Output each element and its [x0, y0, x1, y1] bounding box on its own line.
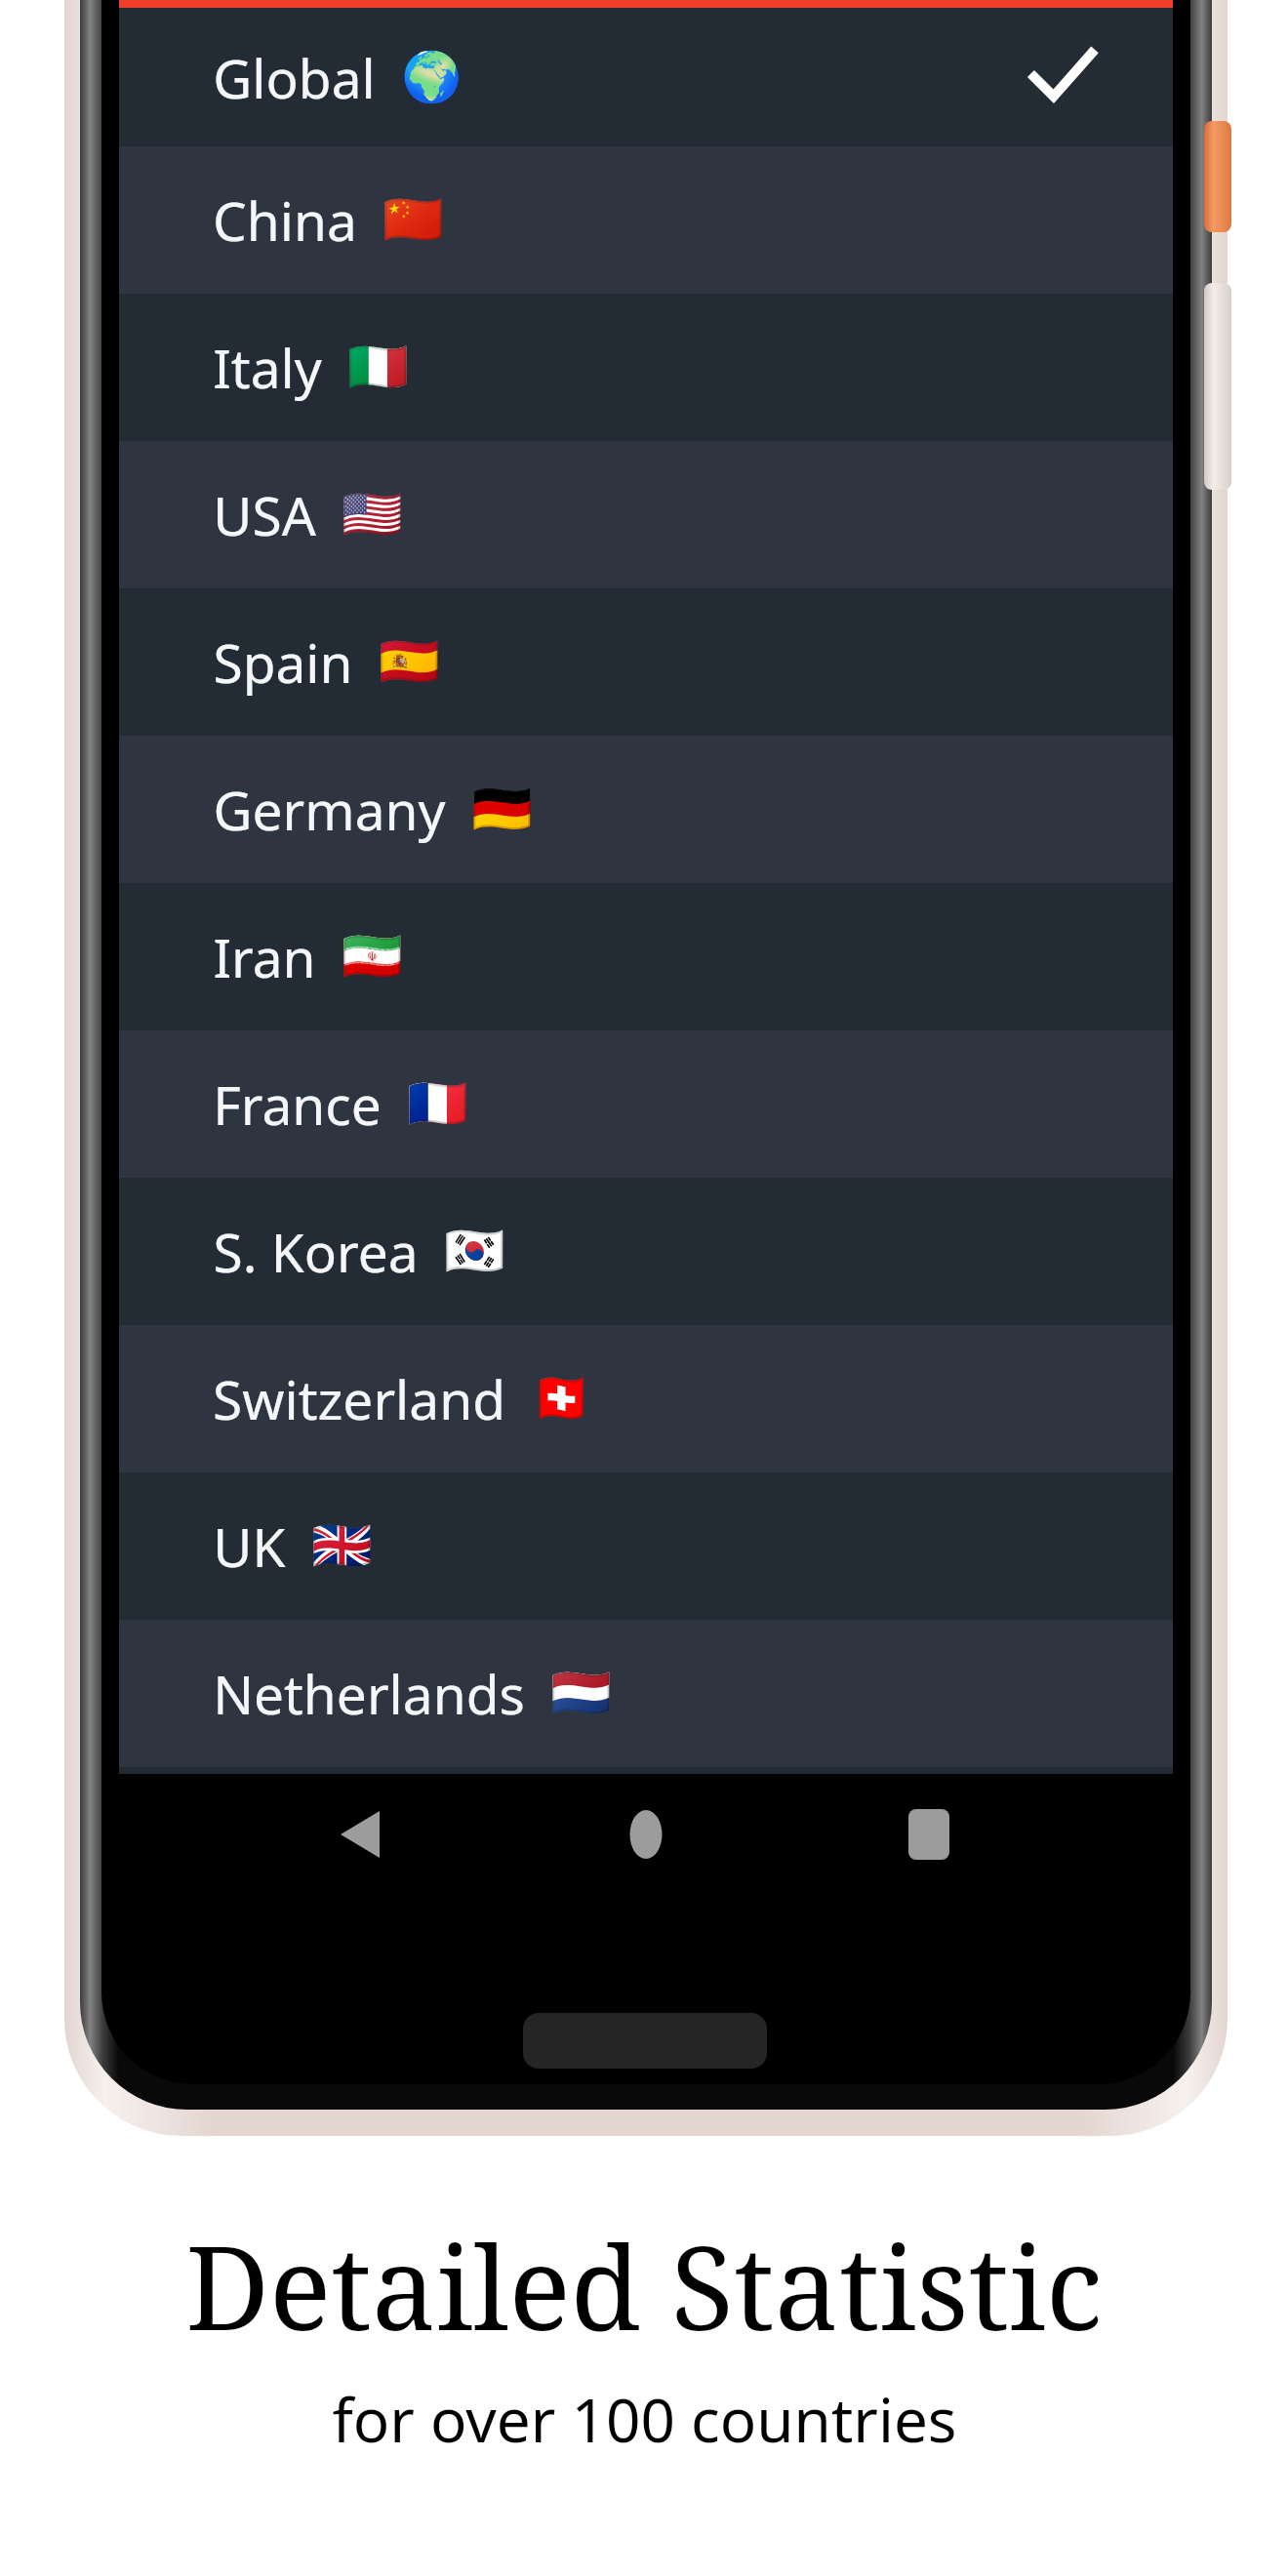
button[interactable]: Volume [1204, 283, 1231, 490]
button[interactable]: Italy [119, 294, 1173, 441]
staticText: 🇫🇷 [407, 1075, 468, 1133]
button[interactable]: Back [306, 1778, 420, 1891]
staticText: Germany [213, 773, 446, 846]
staticText: S. Korea [213, 1215, 419, 1288]
staticText: 🇨🇭 [531, 1370, 592, 1428]
staticText: 🇳🇱 [550, 1665, 612, 1722]
staticText: 🇮🇷 [342, 928, 403, 986]
button[interactable]: Global [119, 8, 1173, 146]
button[interactable]: S. Korea [119, 1178, 1173, 1325]
button[interactable]: Iran [119, 883, 1173, 1030]
staticText: Iran [213, 920, 316, 993]
staticText: Netherlands [213, 1657, 525, 1730]
staticText: 🇬🇧 [311, 1517, 373, 1575]
staticText: France [213, 1067, 382, 1141]
button[interactable]: Recent apps [872, 1778, 986, 1891]
button[interactable]: Germany [119, 736, 1173, 883]
staticText: 🇪🇸 [379, 633, 440, 691]
staticText: 🌍 [401, 49, 463, 106]
staticText: 🇨🇳 [382, 191, 444, 249]
staticText: Global [213, 41, 376, 114]
staticText: China [213, 183, 357, 257]
staticText: 🇮🇹 [347, 339, 409, 396]
button[interactable]: Home [589, 1778, 703, 1891]
staticText: Switzerland [213, 1362, 505, 1435]
button[interactable]: France [119, 1030, 1173, 1178]
staticText: UK [213, 1509, 286, 1583]
staticText: USA [213, 478, 316, 551]
staticText: Italy [213, 331, 322, 404]
staticText: 🇩🇪 [471, 781, 533, 838]
staticText: Spain [213, 625, 353, 699]
button[interactable]: USA [119, 441, 1173, 588]
staticText: for over 100 countries [332, 2378, 957, 2460]
button[interactable]: Switzerland [119, 1325, 1173, 1472]
button[interactable]: China [119, 146, 1173, 294]
button[interactable]: UK [119, 1472, 1173, 1620]
staticText: 🇺🇸 [342, 486, 403, 543]
button[interactable]: Spain [119, 588, 1173, 736]
button[interactable]: Power [1204, 121, 1231, 232]
button[interactable]: Netherlands [119, 1620, 1173, 1767]
staticText: 🇰🇷 [444, 1223, 505, 1280]
staticText: Detailed Statistic [185, 2207, 1103, 2364]
